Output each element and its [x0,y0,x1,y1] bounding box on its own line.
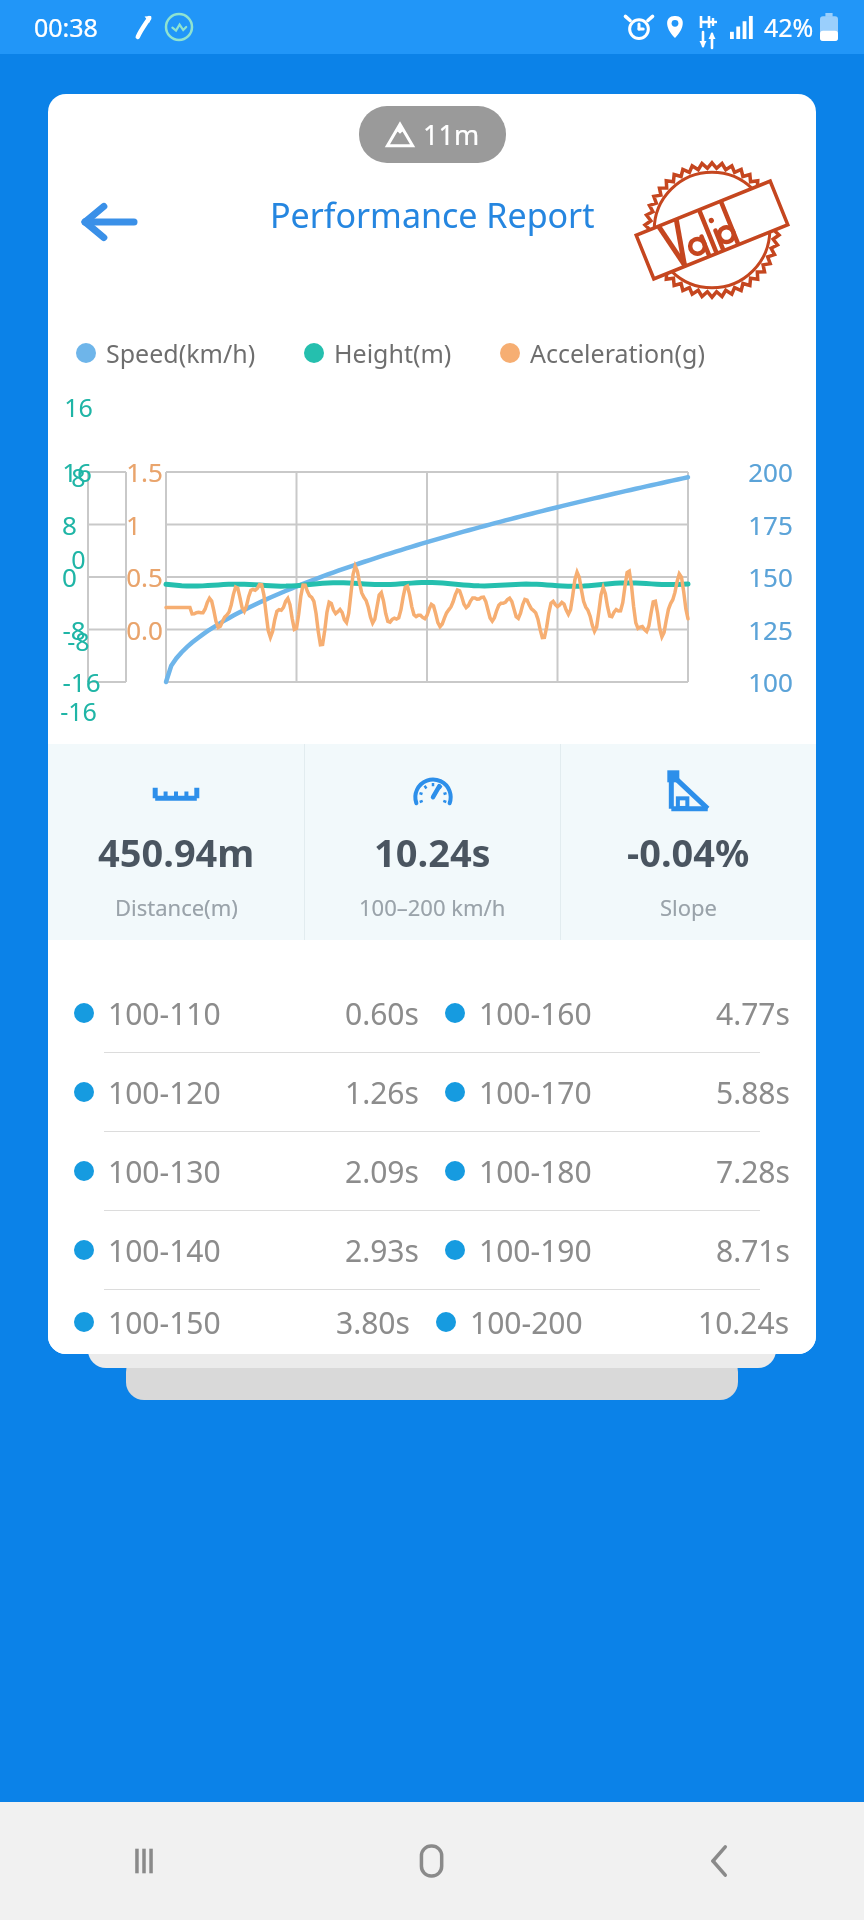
staticText: 0.60s [345,993,419,1034]
staticText: 100-160 [479,993,592,1034]
staticText: 200 [748,454,793,489]
button[interactable]: 450.94m [48,744,304,940]
staticText: 100-120 [108,1072,221,1113]
staticText: 5.88s [716,1072,790,1113]
staticText: Height(m) [334,336,452,370]
staticText: 42% [764,10,814,44]
staticText: 10.24s [698,1302,790,1343]
staticText: 00:38 [34,10,98,44]
button[interactable]: 11m [359,106,506,163]
staticText: 3.80s [336,1302,410,1343]
staticText: 2.93s [345,1230,419,1271]
staticText: 100-150 [108,1302,221,1343]
staticText: 175 [748,507,793,542]
button[interactable]: Home [288,1802,576,1920]
staticText: -8 [67,624,90,658]
staticText: 4.77s [716,993,790,1034]
staticText: 100-170 [479,1072,592,1113]
staticText: 150 [748,559,793,594]
staticText: Acceleration(g) [530,336,705,370]
staticText: 7.28s [716,1151,790,1192]
staticText: 2.09s [345,1151,419,1192]
staticText: 11m [423,116,480,153]
staticText: Speed(km/h) [106,336,256,370]
staticText: 0 [71,542,86,576]
staticText: Performance Report [270,192,595,238]
staticText: 1 [126,507,141,542]
button[interactable]: -0.04% [561,744,816,940]
staticText: 1.5 [126,454,163,489]
staticText: 8 [62,507,77,542]
button[interactable]: 100-130 [48,1132,816,1210]
staticText: 0.5 [126,559,163,594]
staticText: 100–200 km/h [359,892,506,922]
staticText: -8 [62,612,86,647]
button[interactable]: 100-150 [48,1290,816,1354]
staticText: Slope [660,892,718,922]
staticText: Distance(m) [115,892,238,922]
staticText: 8.71s [716,1230,790,1271]
staticText: 0.0 [126,612,163,647]
staticText: 100 [748,664,793,699]
staticText: 450.94m [98,826,255,878]
button[interactable]: 10.24s [305,744,560,940]
staticText: 100-110 [108,993,221,1034]
staticText: 10.24s [374,826,491,878]
staticText: 8 [71,460,86,494]
staticText: -16 [60,694,97,728]
staticText: 100-190 [479,1230,592,1271]
staticText: 0 [62,559,77,594]
staticText: 1.26s [345,1072,419,1113]
staticText: 125 [748,612,793,647]
staticText: 100-200 [470,1302,583,1343]
staticText: 100-140 [108,1230,221,1271]
button[interactable]: Recent apps [0,1802,288,1920]
button[interactable]: 100-110 [48,974,816,1052]
button[interactable]: Back [68,182,148,262]
staticText: 100-130 [108,1151,221,1192]
staticText: -0.04% [627,826,750,878]
button[interactable]: Back [576,1802,864,1920]
staticText: 100-180 [479,1151,592,1192]
button[interactable]: 100-140 [48,1211,816,1289]
staticText: 16 [62,454,92,489]
button[interactable]: 100-120 [48,1053,816,1131]
staticText: -16 [62,664,101,699]
staticText: 16 [64,390,93,424]
